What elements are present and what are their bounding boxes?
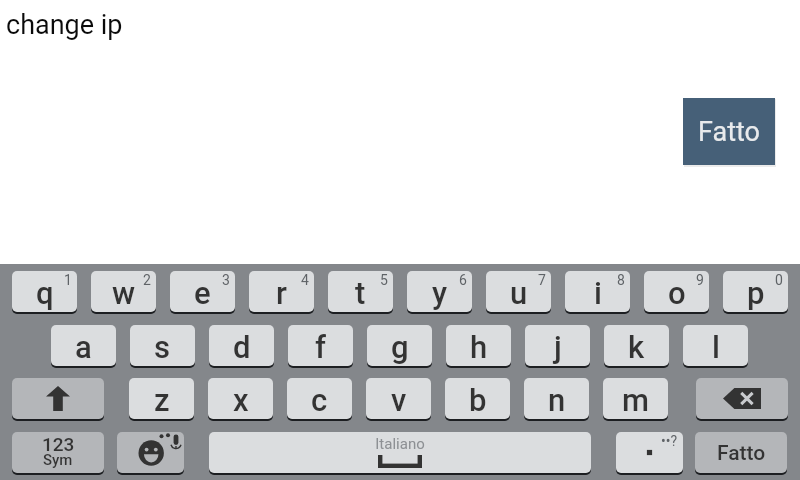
staticText: s — [154, 329, 171, 365]
staticText: change ip — [6, 9, 123, 41]
staticText: f — [315, 329, 326, 365]
button[interactable]: Emoji and voice input — [117, 432, 184, 473]
button[interactable]: Space — [209, 432, 591, 473]
staticText: 3 — [222, 272, 230, 288]
button[interactable]: g — [367, 325, 432, 366]
staticText: t — [355, 275, 366, 311]
staticText: ••? — [661, 433, 678, 449]
staticText: c — [311, 382, 328, 418]
staticText: u — [510, 275, 528, 311]
staticText: b — [469, 382, 487, 418]
staticText: e — [194, 275, 211, 311]
staticText: v — [391, 382, 407, 418]
button[interactable]: q — [12, 271, 77, 312]
staticText: 8 — [617, 272, 625, 288]
button[interactable]: w — [91, 271, 156, 312]
button[interactable]: Period — [616, 432, 683, 473]
staticText: 6 — [459, 272, 467, 288]
button[interactable]: y — [407, 271, 472, 312]
button[interactable]: k — [604, 325, 669, 366]
button[interactable]: a — [51, 325, 116, 366]
staticText: Italiano — [375, 435, 425, 453]
staticText: 0 — [775, 272, 783, 288]
staticText: h — [470, 329, 488, 365]
button[interactable]: d — [209, 325, 274, 366]
staticText: m — [622, 382, 649, 418]
button[interactable]: s — [130, 325, 195, 366]
staticText: w — [112, 275, 136, 311]
button[interactable]: r — [249, 271, 314, 312]
staticText: n — [548, 382, 566, 418]
button[interactable]: u — [486, 271, 551, 312]
button[interactable]: Shift — [12, 378, 104, 419]
staticText: p — [747, 275, 765, 311]
staticText: o — [668, 275, 686, 311]
staticText: y — [432, 275, 448, 311]
button[interactable]: i — [565, 271, 630, 312]
staticText: i — [594, 275, 602, 311]
staticText: Sym — [43, 451, 73, 469]
button[interactable]: Delete — [696, 378, 788, 419]
staticText: 4 — [301, 272, 309, 288]
button[interactable]: j — [525, 325, 590, 366]
staticText: k — [628, 329, 645, 365]
staticText: q — [36, 275, 54, 311]
staticText: Fatto — [717, 441, 766, 466]
button[interactable]: h — [446, 325, 511, 366]
button[interactable]: Symbols — [12, 432, 104, 473]
staticText: 7 — [538, 272, 546, 288]
staticText: 5 — [380, 272, 388, 288]
staticText: 123 — [42, 433, 75, 455]
staticText: g — [391, 329, 409, 365]
button[interactable]: f — [288, 325, 353, 366]
staticText: x — [233, 382, 249, 418]
staticText: 2 — [143, 272, 151, 288]
staticText: z — [154, 382, 170, 418]
button[interactable]: p — [723, 271, 788, 312]
button[interactable]: v — [366, 378, 431, 419]
button[interactable]: c — [287, 378, 352, 419]
staticText: 1 — [64, 272, 72, 288]
button[interactable]: t — [328, 271, 393, 312]
staticText: d — [233, 329, 251, 365]
staticText: Fatto — [698, 116, 760, 148]
button[interactable]: o — [644, 271, 709, 312]
staticText: 9 — [696, 272, 704, 288]
button[interactable]: Fatto — [695, 432, 787, 473]
staticText: a — [75, 329, 92, 365]
button[interactable]: n — [524, 378, 589, 419]
staticText: r — [276, 275, 287, 311]
button[interactable]: Fatto — [683, 98, 775, 165]
button[interactable]: z — [129, 378, 194, 419]
staticText: j — [554, 329, 562, 365]
button[interactable]: e — [170, 271, 235, 312]
staticText: l — [712, 329, 720, 365]
button[interactable]: l — [683, 325, 748, 366]
button[interactable]: x — [208, 378, 273, 419]
button[interactable]: b — [445, 378, 510, 419]
button[interactable]: m — [603, 378, 668, 419]
